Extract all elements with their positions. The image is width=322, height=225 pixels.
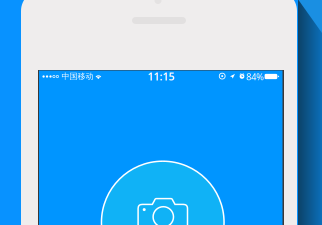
staticText: 84% <box>246 70 264 83</box>
staticText: 中国移动 <box>61 71 93 81</box>
staticText: 11:15 <box>147 69 174 83</box>
